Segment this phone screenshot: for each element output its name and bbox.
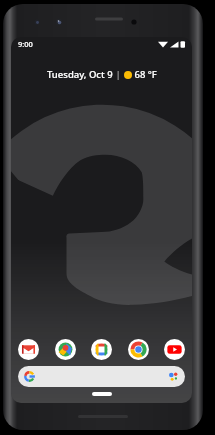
button[interactable]: YouTube — [164, 339, 185, 360]
staticText: Tuesday, Oct 9 — [47, 68, 113, 81]
staticText: 9:00 — [18, 39, 33, 49]
button[interactable]: Tuesday, Oct 9 — [43, 66, 161, 83]
button[interactable]: Photos — [91, 339, 112, 360]
button[interactable]: Maps — [55, 339, 76, 360]
button[interactable]: Home — [92, 392, 112, 396]
button[interactable] — [18, 366, 185, 387]
staticText: 68 °F — [132, 68, 157, 81]
button[interactable]: Gmail — [18, 339, 39, 360]
button[interactable]: Chrome — [128, 339, 149, 360]
staticText: | — [113, 68, 124, 81]
